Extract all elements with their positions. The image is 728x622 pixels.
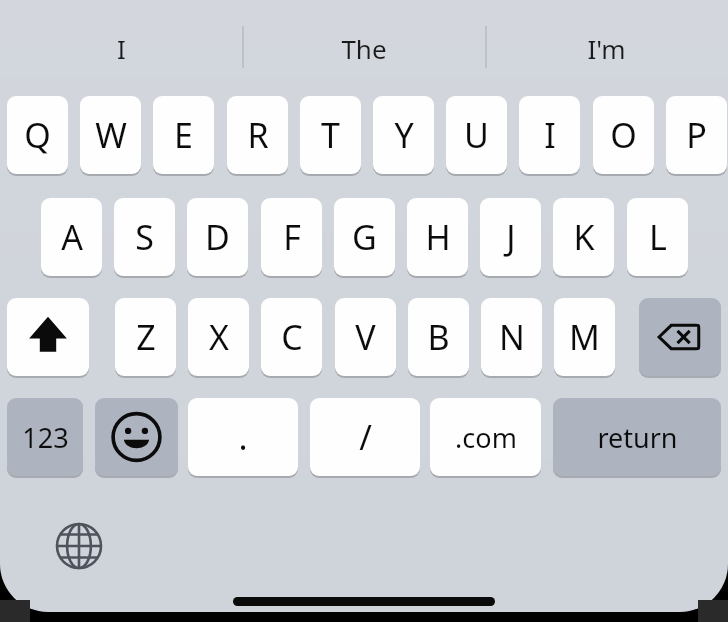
staticText: I'm <box>587 31 626 66</box>
button[interactable]: J <box>480 198 541 276</box>
staticText: J <box>506 214 516 260</box>
staticText: T <box>321 112 340 158</box>
staticText: M <box>569 314 600 360</box>
button[interactable]: U <box>446 96 507 174</box>
staticText: I <box>117 31 126 66</box>
button[interactable]: . <box>188 398 298 476</box>
button[interactable]: H <box>407 198 468 276</box>
button[interactable]: X <box>188 298 249 376</box>
button[interactable]: Y <box>373 96 434 174</box>
staticText: U <box>464 112 489 158</box>
staticText: Z <box>136 314 156 360</box>
staticText: K <box>573 214 595 260</box>
staticText: The <box>341 31 387 66</box>
button[interactable]: F <box>261 198 322 276</box>
staticText: X <box>209 314 229 360</box>
button[interactable]: G <box>334 198 395 276</box>
button[interactable]: L <box>627 198 688 276</box>
staticText: 123 <box>22 419 69 456</box>
staticText: . <box>238 414 248 460</box>
button[interactable]: N <box>481 298 542 376</box>
staticText: N <box>499 314 525 360</box>
staticText: return <box>597 419 678 456</box>
button[interactable]: I'm <box>485 20 728 76</box>
staticText: H <box>425 214 451 260</box>
button[interactable]: V <box>335 298 396 376</box>
staticText: C <box>281 314 303 360</box>
staticText: I <box>544 112 556 158</box>
staticText: G <box>352 214 377 260</box>
button[interactable]: I <box>0 20 242 76</box>
staticText: P <box>686 112 707 158</box>
staticText: O <box>610 112 637 158</box>
button[interactable]: B <box>408 298 469 376</box>
staticText: D <box>205 214 230 260</box>
button[interactable]: C <box>261 298 322 376</box>
button[interactable]: Next keyboard <box>47 514 111 578</box>
button[interactable]: I <box>519 96 580 174</box>
button[interactable]: A <box>41 198 102 276</box>
staticText: S <box>135 214 154 260</box>
button[interactable]: Shift <box>7 298 89 376</box>
button[interactable]: R <box>227 96 288 174</box>
staticText: .com <box>455 419 517 456</box>
staticText: / <box>359 414 372 460</box>
button[interactable]: P <box>666 96 727 174</box>
button[interactable]: The <box>242 20 485 76</box>
button[interactable]: Z <box>115 298 176 376</box>
button[interactable]: / <box>310 398 420 476</box>
staticText: B <box>427 314 450 360</box>
staticText: R <box>247 112 269 158</box>
button[interactable]: K <box>553 198 614 276</box>
button[interactable]: 123 <box>7 398 83 476</box>
button[interactable]: S <box>114 198 175 276</box>
button[interactable]: D <box>187 198 248 276</box>
button[interactable]: Emoji <box>95 398 178 476</box>
button[interactable]: E <box>153 96 214 174</box>
button[interactable]: .com <box>430 398 541 476</box>
button[interactable]: W <box>80 96 141 174</box>
button[interactable]: Delete <box>639 298 721 376</box>
button[interactable]: T <box>300 96 361 174</box>
staticText: E <box>174 112 193 158</box>
staticText: Q <box>24 112 51 158</box>
staticText: W <box>95 112 127 158</box>
staticText: A <box>61 214 83 260</box>
staticText: Y <box>394 112 414 158</box>
button[interactable]: Q <box>7 96 68 174</box>
staticText: V <box>355 314 376 360</box>
button[interactable]: O <box>593 96 654 174</box>
staticText: L <box>649 214 667 260</box>
button[interactable]: return <box>553 398 721 476</box>
button[interactable]: M <box>554 298 615 376</box>
staticText: F <box>283 214 301 260</box>
